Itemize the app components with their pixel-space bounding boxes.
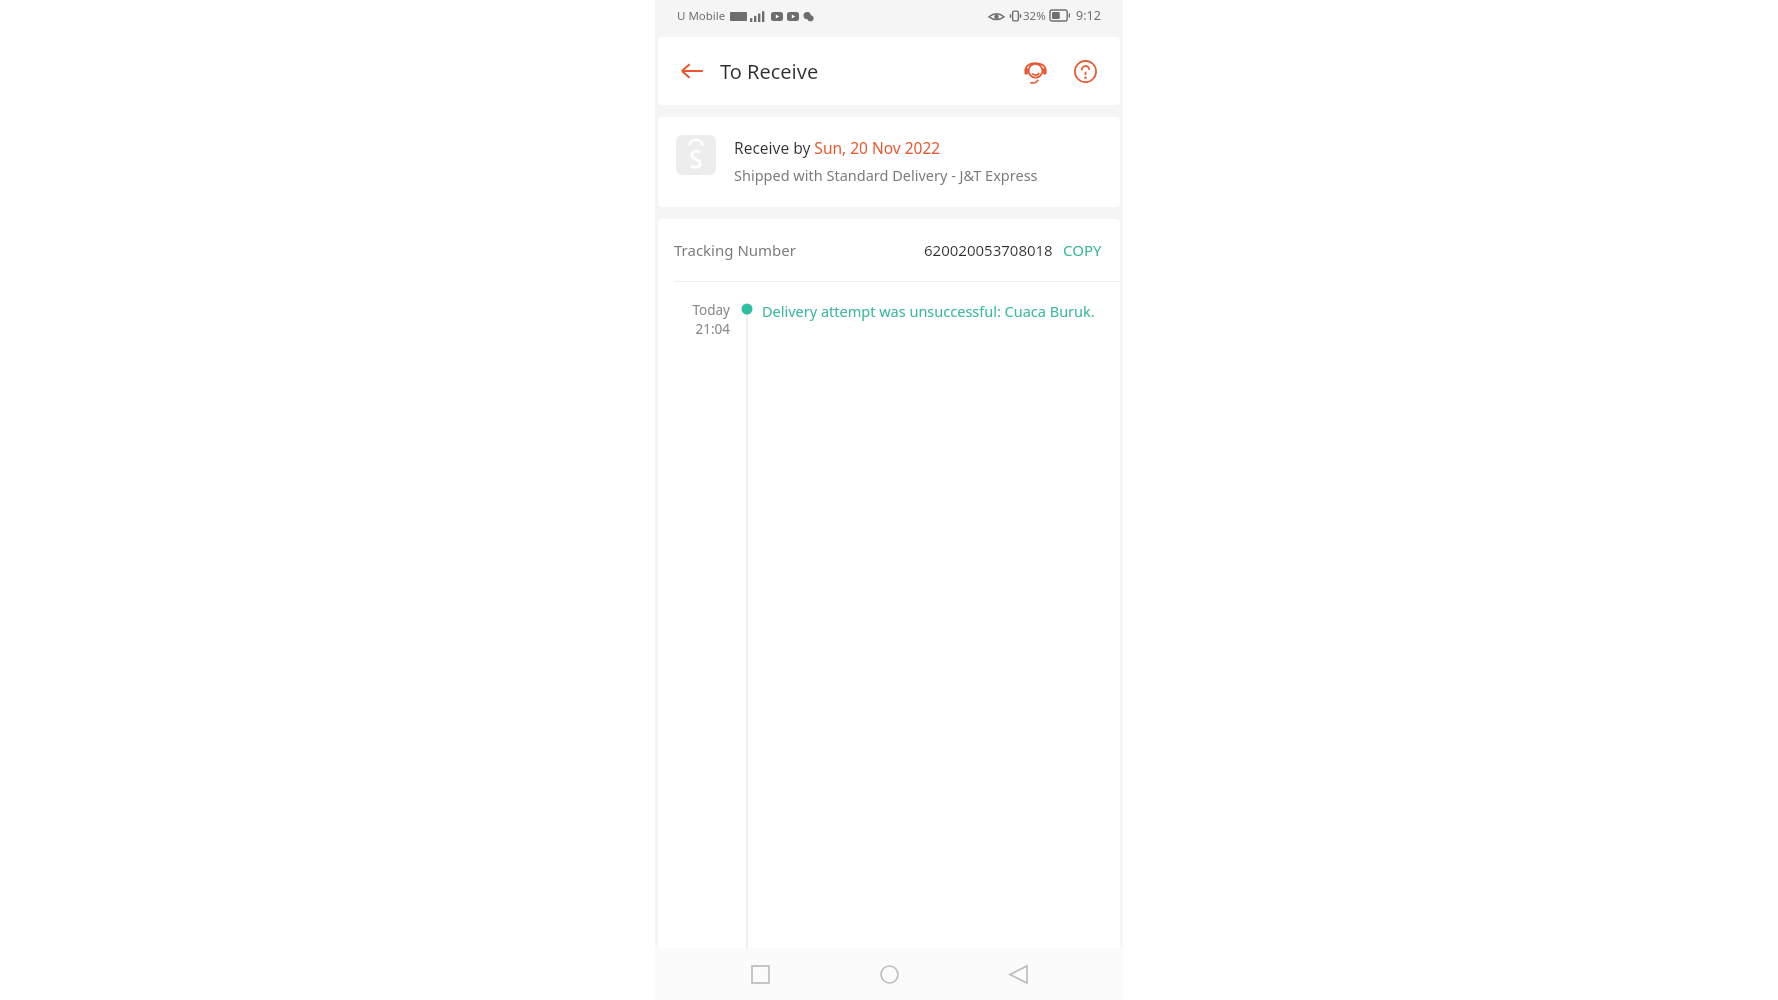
staticText: 620020053708018 [924, 240, 1053, 260]
staticText: 32% [1023, 8, 1046, 24]
staticText: To Receive [720, 58, 819, 85]
button[interactable]: Help [1064, 50, 1106, 92]
button[interactable]: Back [994, 950, 1042, 998]
staticText: Receive by Sun, 20 Nov 2022 [734, 137, 941, 158]
button[interactable]: Back [672, 51, 712, 91]
staticText: 9:12 [1076, 7, 1101, 24]
button[interactable]: Receive by Sun, 20 Nov 2022 [658, 117, 1120, 207]
staticText: Delivery attempt was unsuccessful: Cuaca… [762, 301, 1095, 321]
button[interactable]: Recent apps [736, 950, 784, 998]
staticText: U Mobile [677, 8, 726, 24]
button[interactable]: Home [865, 950, 913, 998]
staticText: Shipped with Standard Delivery - J&T Exp… [734, 165, 1038, 185]
button[interactable]: Customer support [1014, 50, 1056, 92]
staticText: COPY [1063, 240, 1102, 260]
button[interactable]: COPY [1061, 236, 1104, 264]
staticText: Today [692, 301, 730, 319]
staticText: 21:04 [695, 320, 730, 338]
button[interactable]: Today [658, 296, 1120, 1000]
staticText: Tracking Number [674, 240, 796, 260]
